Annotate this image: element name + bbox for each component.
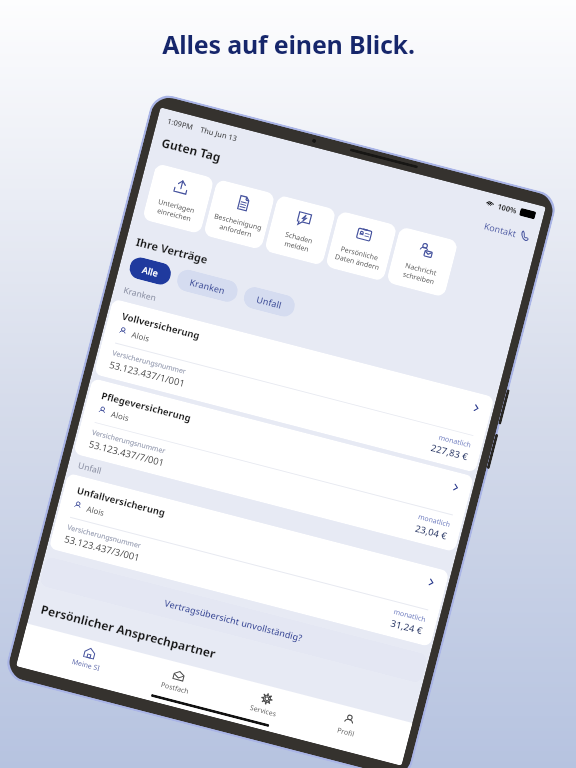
staticText: Bescheinigung anfordern: [211, 211, 263, 241]
button[interactable]: Postfach: [150, 662, 204, 701]
staticText: Unfall: [77, 459, 103, 477]
staticText: Vertragsübersicht unvollständig?: [163, 596, 304, 644]
staticText: Guten Tag: [160, 134, 223, 165]
staticText: Services: [249, 703, 277, 719]
staticText: Vollversicherung: [120, 310, 201, 342]
staticText: Alle: [141, 263, 159, 279]
button[interactable]: Bescheinigung anfordern: [203, 179, 276, 250]
button[interactable]: Vertragsübersicht unvollständig?: [39, 556, 428, 684]
staticText: Pflegeversicherung: [100, 389, 192, 425]
staticText: monatlich: [437, 433, 472, 451]
button[interactable]: Persönliche Daten ändern: [325, 210, 397, 282]
staticText: Profil: [336, 726, 356, 740]
other: Details: [471, 403, 481, 413]
button[interactable]: Schaden melden: [264, 195, 336, 266]
button[interactable]: Unfall: [241, 285, 297, 319]
other: Details: [451, 482, 461, 492]
staticText: Ihre Verträge: [134, 234, 210, 267]
staticText: Postfach: [160, 680, 190, 697]
button[interactable]: Kranken: [175, 267, 240, 304]
staticText: 23,04 €: [414, 522, 449, 543]
staticText: Meine SI: [71, 657, 101, 674]
staticText: Alois: [85, 503, 106, 518]
staticText: 31,24 €: [389, 617, 424, 637]
button[interactable]: Alle: [127, 255, 173, 287]
staticText: Unfall: [255, 293, 283, 311]
staticText: Versicherungsnummer: [66, 523, 142, 551]
staticText: Schaden melden: [281, 230, 314, 254]
staticText: monatlich: [392, 607, 427, 625]
other: Kontakt anrufen: [519, 230, 531, 242]
staticText: Nachricht schreiben: [401, 261, 438, 286]
staticText: Kontakt: [483, 219, 518, 239]
button[interactable]: Unfallversicherung: [49, 473, 450, 647]
staticText: 53.123.437/7/001: [87, 437, 166, 469]
staticText: Unfallversicherung: [75, 484, 167, 519]
staticText: monatlich: [417, 512, 451, 530]
button[interactable]: Pflegeversicherung: [73, 378, 474, 552]
staticText: Versicherungsnummer: [111, 348, 187, 377]
staticText: 227,83 €: [429, 441, 469, 463]
staticText: 53.123.437/3/001: [63, 532, 142, 564]
button[interactable]: Kontakt: [480, 217, 534, 245]
staticText: Versicherungsnummer: [91, 428, 167, 456]
staticText: Kranken: [188, 275, 226, 296]
button[interactable]: Meine SI: [60, 639, 115, 678]
staticText: Persönliche Daten ändern: [334, 243, 383, 272]
button[interactable]: Unterlagen einreichen: [142, 163, 215, 234]
staticText: Alois: [131, 329, 151, 344]
staticText: Alois: [110, 408, 130, 423]
staticText: Kranken: [122, 284, 158, 304]
staticText: Alles auf einen Blick.: [162, 27, 415, 61]
button[interactable]: Profil: [326, 708, 370, 744]
staticText: Thu Jun 13: [199, 124, 238, 143]
button[interactable]: Nachricht schreiben: [386, 226, 458, 297]
staticText: 53.123.437/1/001: [108, 358, 187, 390]
staticText: 1:09PM: [166, 116, 195, 132]
staticText: Unterlagen einreichen: [155, 197, 196, 224]
staticText: Persönlicher Ansprechpartner: [39, 601, 218, 661]
staticText: 100%: [496, 201, 518, 216]
button[interactable]: Vollversicherung: [94, 299, 495, 473]
button[interactable]: Services: [239, 685, 291, 724]
other: Details: [426, 577, 436, 587]
